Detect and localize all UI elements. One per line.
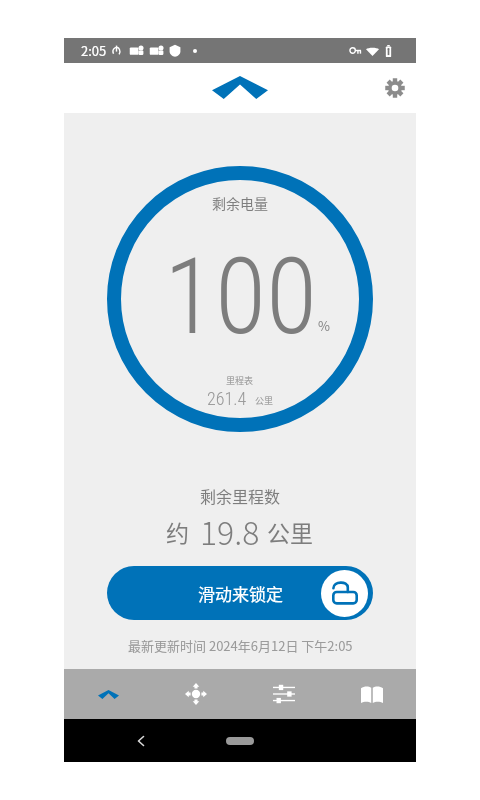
staticText: 100 — [164, 236, 318, 359]
button[interactable]: Settings — [382, 75, 408, 101]
staticText: 剩余电量 — [212, 193, 268, 213]
staticText: 约 — [166, 515, 189, 548]
button[interactable]: Back — [130, 730, 152, 752]
staticText: 公里 — [255, 394, 274, 407]
staticText: 里程表 — [226, 374, 254, 387]
button[interactable]: Manual — [328, 669, 416, 719]
button[interactable]: Controls — [152, 669, 240, 719]
button[interactable]: Home — [212, 76, 268, 99]
button[interactable]: Settings — [240, 669, 328, 719]
staticText: % — [318, 316, 330, 335]
button[interactable]: Status — [64, 669, 152, 719]
button[interactable]: Home — [226, 737, 254, 745]
staticText: 滑动来锁定 — [198, 581, 283, 606]
staticText: 261.4 — [207, 388, 247, 409]
button[interactable]: 滑动来锁定 — [107, 566, 373, 620]
staticText: 19.8 — [200, 508, 260, 554]
staticText: 2:05 — [81, 41, 107, 60]
staticText: 剩余里程数 — [200, 484, 281, 507]
staticText: 最新更新时间 2024年6月12日 下午2:05 — [128, 636, 353, 655]
staticText: 公里 — [267, 515, 313, 548]
